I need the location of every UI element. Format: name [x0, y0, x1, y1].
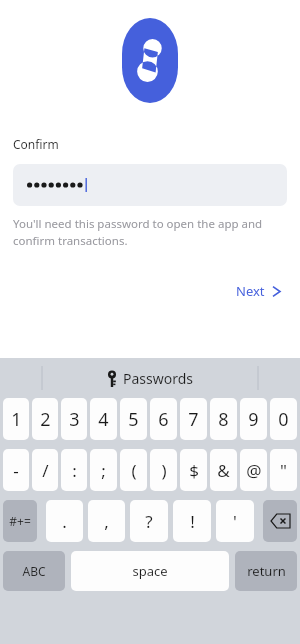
button[interactable]: Next	[230, 278, 288, 304]
button[interactable]: 6	[150, 398, 177, 440]
button[interactable]: 8	[210, 398, 237, 440]
staticText: return	[247, 562, 286, 580]
button[interactable]: $	[180, 449, 207, 491]
button[interactable]: @	[240, 449, 267, 491]
button[interactable]: ;	[90, 449, 117, 491]
staticText: (	[131, 459, 137, 482]
staticText: :	[72, 459, 77, 482]
button[interactable]: ABC	[3, 551, 65, 591]
staticText: 3	[69, 407, 80, 432]
button[interactable]: 9	[240, 398, 267, 440]
staticText: 6	[158, 407, 169, 432]
staticText: 8	[218, 407, 229, 432]
button[interactable]: return	[235, 551, 297, 591]
staticText: @	[246, 459, 262, 482]
button[interactable]: 2	[32, 398, 58, 440]
staticText: ABC	[22, 563, 46, 579]
button[interactable]: )	[150, 449, 177, 491]
staticText: Next	[236, 282, 265, 300]
button[interactable]: !	[173, 500, 211, 542]
staticText: 1	[11, 407, 22, 432]
button[interactable]: 7	[180, 398, 207, 440]
button[interactable]: #+=	[3, 500, 37, 542]
button[interactable]: 4	[90, 398, 117, 440]
button[interactable]	[13, 164, 287, 206]
button[interactable]: (	[120, 449, 147, 491]
button[interactable]: '	[216, 500, 254, 542]
button[interactable]: Delete	[263, 500, 297, 542]
staticText: -	[13, 459, 19, 482]
button[interactable]: .	[46, 500, 83, 542]
staticText: $	[189, 459, 199, 482]
button[interactable]: :	[61, 449, 87, 491]
staticText: ;	[101, 459, 106, 482]
staticText: 2	[40, 407, 51, 432]
staticText: 7	[188, 407, 199, 432]
staticText: !	[190, 510, 195, 533]
staticText: &	[217, 459, 230, 482]
button[interactable]: -	[3, 449, 29, 491]
staticText: ?	[145, 510, 153, 533]
button[interactable]: space	[71, 551, 229, 591]
staticText: ,	[104, 510, 109, 533]
button[interactable]: 3	[61, 398, 87, 440]
button[interactable]: "	[270, 449, 297, 491]
staticText: 9	[248, 407, 259, 432]
staticText: 4	[98, 407, 109, 432]
staticText: 0	[278, 407, 289, 432]
button[interactable]: &	[210, 449, 237, 491]
button[interactable]: /	[32, 449, 58, 491]
staticText: )	[161, 459, 167, 482]
button[interactable]: ?	[130, 500, 168, 542]
staticText: .	[62, 510, 67, 533]
button[interactable]: 5	[120, 398, 147, 440]
staticText: #+=	[9, 513, 31, 529]
button[interactable]: ,	[88, 500, 125, 542]
staticText: '	[233, 510, 237, 533]
staticText: Passwords	[123, 369, 194, 388]
button[interactable]: 0	[270, 398, 297, 440]
staticText: You'll need this password to open the ap…	[13, 216, 268, 248]
staticText: "	[280, 459, 287, 482]
staticText: 5	[128, 407, 139, 432]
button[interactable]: 1	[3, 398, 29, 440]
staticText: /	[42, 459, 49, 482]
staticText: space	[132, 562, 168, 580]
staticText: Confirm	[13, 136, 59, 152]
button[interactable]: Passwords	[99, 366, 202, 391]
